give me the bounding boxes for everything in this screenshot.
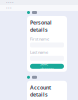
staticText: Save changes (40, 61, 54, 72)
button[interactable]: Save changes (30, 64, 64, 69)
staticText: First name (30, 36, 49, 41)
staticText: ••• (6, 5, 12, 11)
staticText: Account details (30, 84, 51, 98)
staticText: Last name (30, 49, 48, 55)
staticText: •••• (6, 0, 14, 5)
staticText: Personal details (30, 19, 52, 33)
